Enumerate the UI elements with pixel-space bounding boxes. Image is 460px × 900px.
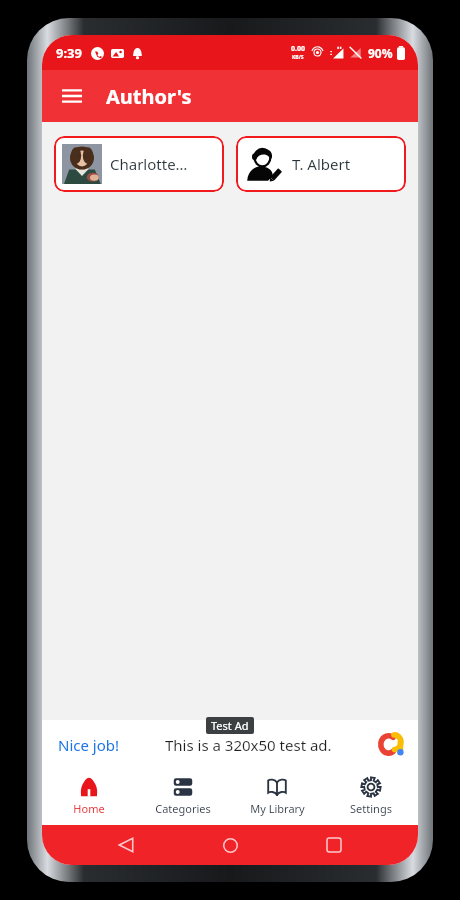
button[interactable]: Nice job! bbox=[42, 720, 418, 770]
button[interactable]: Settings bbox=[324, 770, 418, 825]
button[interactable]: Recent apps bbox=[314, 825, 354, 865]
staticText: T. Albert bbox=[292, 154, 351, 174]
staticText: KB/S bbox=[292, 54, 304, 61]
button[interactable]: My Library bbox=[230, 770, 324, 825]
staticText: Settings bbox=[350, 801, 392, 816]
staticText: My Library bbox=[250, 801, 305, 816]
staticText: Home bbox=[73, 801, 105, 816]
staticText: 90% bbox=[368, 45, 393, 61]
staticText: Charlotte… bbox=[110, 154, 188, 174]
staticText: Categories bbox=[155, 801, 211, 816]
staticText: Test Ad bbox=[211, 718, 249, 733]
button[interactable]: Categories bbox=[136, 770, 230, 825]
staticText: Author's bbox=[106, 83, 192, 110]
staticText: This is a 320x50 test ad. bbox=[165, 735, 332, 755]
staticText: 9:39 bbox=[56, 44, 82, 62]
button[interactable]: Home bbox=[42, 770, 136, 825]
button[interactable]: Open navigation menu bbox=[50, 74, 94, 118]
button[interactable]: Back bbox=[106, 825, 146, 865]
staticText: Nice job! bbox=[58, 735, 120, 755]
button[interactable]: T. Albert bbox=[236, 136, 406, 192]
staticText: 0.00 bbox=[291, 44, 305, 54]
button[interactable]: Charlotte… bbox=[54, 136, 224, 192]
button[interactable]: Home bbox=[210, 825, 250, 865]
